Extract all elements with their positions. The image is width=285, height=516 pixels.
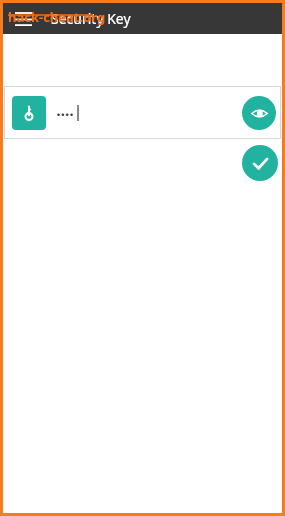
button[interactable]: Key (12, 96, 46, 130)
button[interactable]: Open navigation menu (8, 4, 38, 34)
button[interactable]: Show password (242, 96, 276, 130)
staticText: hack-cheat.org (8, 8, 106, 26)
staticText: Security Key (51, 9, 131, 28)
button[interactable]: Confirm (242, 145, 278, 181)
